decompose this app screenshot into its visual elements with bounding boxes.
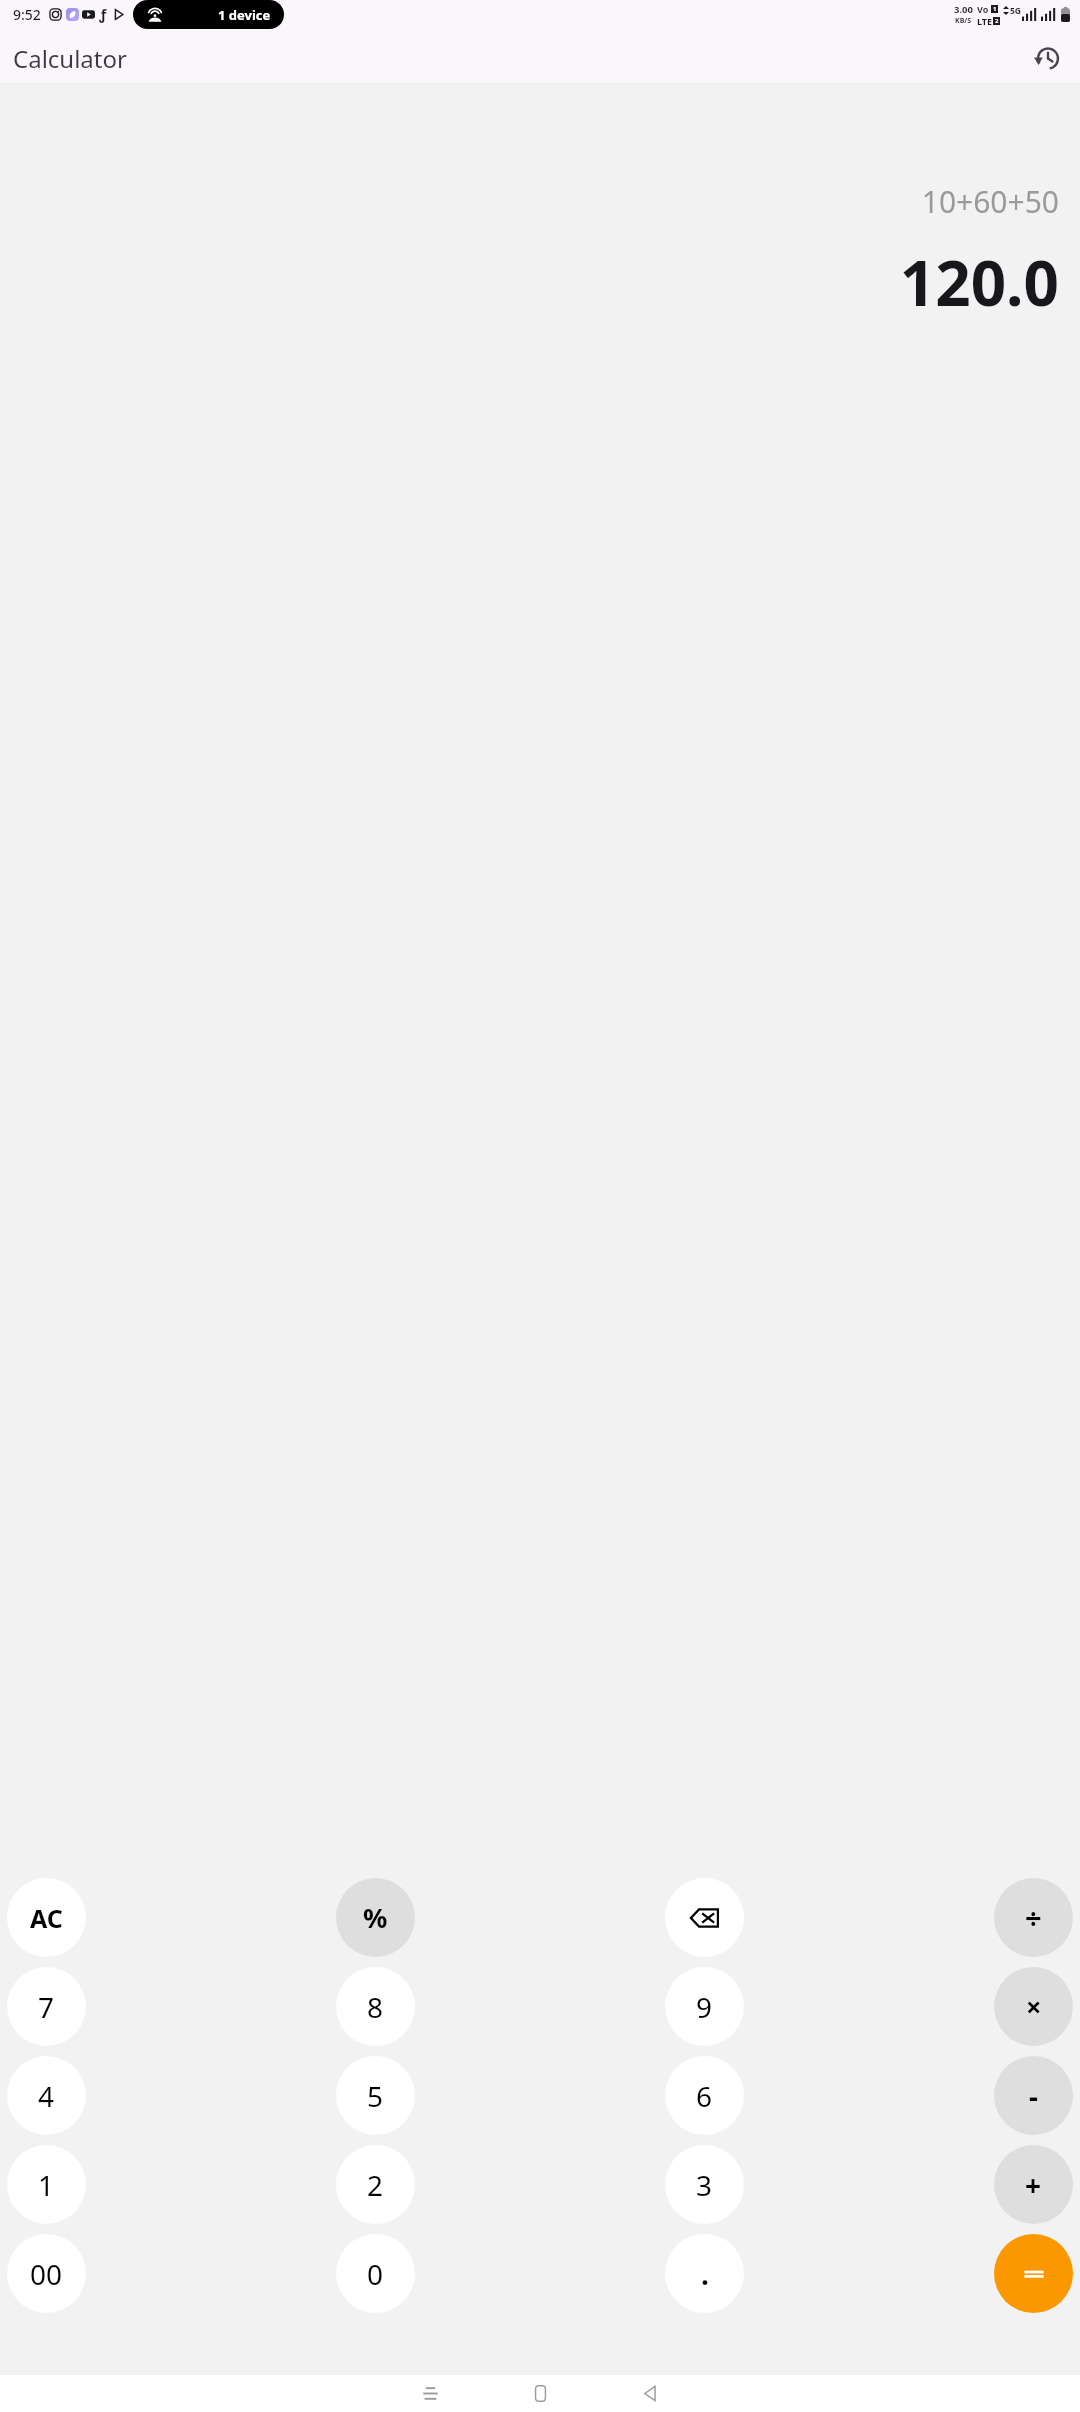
button[interactable]: 4	[7, 2056, 86, 2135]
staticText: KB/S	[955, 16, 972, 26]
staticText: 2	[367, 2166, 384, 2204]
button[interactable]: AC	[7, 1878, 86, 1957]
button[interactable]: 0	[336, 2234, 415, 2313]
staticText: 120.0	[899, 240, 1059, 324]
staticText: 3	[696, 2166, 713, 2204]
button[interactable]: -	[994, 2056, 1073, 2135]
staticText: -	[1029, 2077, 1038, 2115]
staticText: LTE	[977, 15, 993, 27]
staticText: ÷	[1025, 1898, 1042, 1937]
staticText: AC	[30, 1901, 63, 1935]
button[interactable]: History	[1024, 36, 1068, 80]
staticText: 7	[38, 1988, 55, 2026]
button[interactable]: Equals	[994, 2234, 1073, 2313]
button[interactable]: Home	[508, 2375, 572, 2412]
button[interactable]: ÷	[994, 1878, 1073, 1957]
staticText: 6	[696, 2077, 713, 2115]
button[interactable]: Hotspot, 1 device	[133, 0, 284, 29]
staticText: 5G	[1010, 5, 1022, 17]
button[interactable]: 2	[336, 2145, 415, 2224]
button[interactable]: 5	[336, 2056, 415, 2135]
staticText: 0	[367, 2255, 384, 2293]
button[interactable]: Backspace	[665, 1878, 744, 1957]
staticText: 9:52	[13, 5, 41, 24]
button[interactable]: 8	[336, 1967, 415, 2046]
button[interactable]: %	[336, 1878, 415, 1957]
staticText: Calculator	[13, 42, 127, 75]
button[interactable]: .	[665, 2234, 744, 2313]
staticText: 3.00	[954, 3, 973, 16]
button[interactable]: 00	[7, 2234, 86, 2313]
staticText: 4	[38, 2077, 55, 2115]
staticText: 9	[696, 1988, 713, 2026]
button[interactable]: 1	[7, 2145, 86, 2224]
button[interactable]: 6	[665, 2056, 744, 2135]
button[interactable]: +	[994, 2145, 1073, 2224]
staticText: ×	[1026, 1988, 1042, 2025]
staticText: Vo	[977, 3, 989, 15]
staticText: 1 device	[218, 6, 271, 24]
button[interactable]: Recents	[398, 2375, 462, 2412]
staticText: 8	[367, 1988, 384, 2026]
staticText: 2	[995, 17, 999, 25]
staticText: 1	[38, 2166, 55, 2204]
button[interactable]: Back	[618, 2375, 682, 2412]
staticText: .	[701, 2255, 709, 2293]
button[interactable]: 7	[7, 1967, 86, 2046]
button[interactable]: ×	[994, 1967, 1073, 2046]
staticText: %	[363, 1899, 388, 1936]
button[interactable]: 9	[665, 1967, 744, 2046]
staticText: 5	[367, 2077, 384, 2115]
staticText: 1	[993, 5, 997, 13]
staticText: 00	[30, 2255, 63, 2293]
staticText: 10+60+50	[921, 181, 1059, 222]
staticText: ƒ	[99, 5, 107, 24]
staticText: +	[1025, 2166, 1042, 2204]
button[interactable]: 3	[665, 2145, 744, 2224]
